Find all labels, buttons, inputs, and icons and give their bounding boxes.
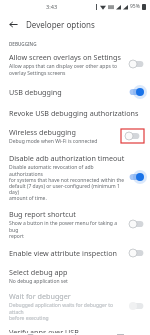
staticText: Wait for debugger — [9, 291, 71, 301]
button[interactable]: Wait for debugger — [0, 288, 150, 324]
staticText: No debug application set — [9, 278, 68, 285]
button[interactable]: Wireless debugging — [0, 123, 150, 149]
staticText: Select debug app — [9, 267, 68, 277]
staticText: Verify apps over USB — [9, 327, 79, 333]
button[interactable]: Allow screen overlays on Settings — [0, 49, 150, 81]
button[interactable]: Disable adb authorization timeout toggle — [129, 172, 144, 182]
button[interactable]: Bug report shortcut toggle — [129, 219, 144, 229]
staticText: 95% — [130, 3, 140, 10]
staticText: Disable automatic revocation of adb auth… — [9, 164, 125, 201]
staticText: Disable adb authorization timeout — [9, 153, 125, 163]
staticText: Debug mode when Wi-Fi is connected — [9, 138, 98, 145]
button[interactable]: Enable view attribute inspection — [0, 243, 150, 263]
staticText: Developer options — [26, 19, 95, 30]
button[interactable]: Wireless debugging toggle — [121, 129, 144, 143]
staticText: Revoke USB debugging authorizations — [9, 108, 139, 118]
staticText: USB debugging — [9, 87, 62, 97]
button[interactable]: Select debug app — [0, 263, 150, 288]
button[interactable]: Allow screen overlays on Settings toggle — [129, 59, 144, 69]
staticText: Wireless debugging — [9, 127, 76, 137]
staticText: Allow apps that can display over other a… — [9, 63, 117, 76]
button[interactable]: Wait for debugger toggle — [129, 301, 144, 311]
button[interactable]: USB debugging — [0, 81, 150, 103]
staticText: Enable view attribute inspection — [9, 248, 117, 258]
button[interactable]: Verify apps over USB — [0, 324, 150, 335]
staticText: Bug report shortcut — [9, 209, 76, 219]
staticText: Debugged application waits for debugger … — [9, 302, 125, 321]
button[interactable]: Disable adb authorization timeout — [0, 149, 150, 205]
staticText: 3:43 — [46, 3, 58, 11]
button[interactable]: Enable view attribute inspection toggle — [129, 248, 144, 258]
button[interactable]: Back — [6, 17, 20, 31]
button[interactable]: USB debugging toggle — [129, 87, 144, 97]
button[interactable]: Bug report shortcut — [0, 205, 150, 243]
staticText: Show a button in the power menu for taki… — [9, 220, 125, 239]
button[interactable]: Revoke USB debugging authorizations — [0, 103, 150, 123]
staticText: Allow screen overlays on Settings — [9, 52, 121, 62]
staticText: DEBUGGING — [9, 41, 37, 47]
